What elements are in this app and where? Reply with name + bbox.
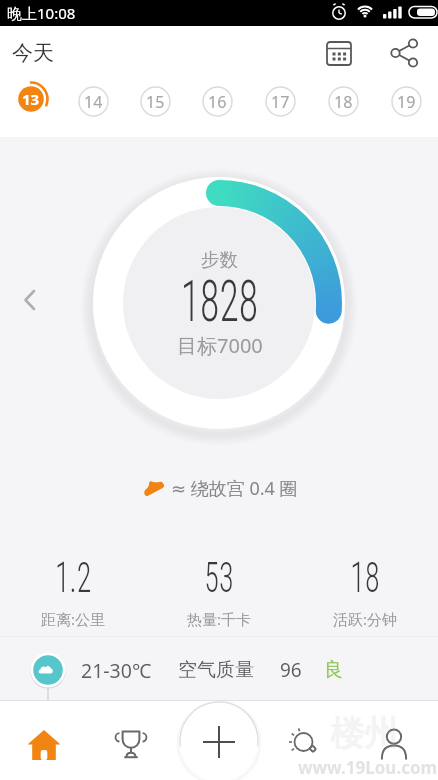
staticText: 空气质量 (178, 658, 254, 682)
button[interactable]: 21-30℃ (30, 651, 438, 689)
staticText: 1828 (181, 268, 258, 335)
staticText: 目标7000 (177, 332, 263, 359)
button[interactable] (87, 700, 174, 780)
button[interactable]: 15 (124, 79, 186, 123)
staticText: 楼州 (330, 712, 398, 755)
staticText: 15 (146, 91, 165, 113)
button[interactable] (389, 38, 419, 68)
button[interactable] (20, 289, 42, 311)
staticText: 18 (334, 91, 353, 113)
button[interactable]: 13 (0, 79, 62, 123)
staticText: 13 (22, 89, 40, 109)
button[interactable] (350, 700, 438, 780)
button[interactable] (0, 700, 87, 780)
staticText: 19 (397, 91, 416, 113)
staticText: 17 (271, 91, 290, 113)
staticText: 14 (84, 91, 103, 113)
button[interactable]: 16 (186, 79, 249, 123)
staticText: 步数 (201, 248, 238, 271)
button[interactable]: 19 (375, 79, 438, 123)
staticText: 16 (208, 91, 227, 113)
staticText: 21-30℃ (81, 657, 152, 684)
staticText: www.19Lou.com (298, 756, 438, 779)
button[interactable] (262, 700, 350, 780)
staticText: 活跃:分钟 (333, 609, 398, 629)
button[interactable] (324, 38, 354, 68)
button[interactable]: 18 (312, 79, 375, 123)
staticText: 晚上10:08 (7, 3, 76, 23)
staticText: ≈ 绕故宫 0.4 圈 (171, 476, 298, 498)
button[interactable] (174, 700, 262, 780)
staticText: 良 (324, 658, 343, 682)
staticText: 热量:千卡 (187, 609, 252, 629)
button[interactable]: 17 (249, 79, 312, 123)
staticText: 距离:公里 (41, 609, 106, 629)
button[interactable]: 14 (62, 79, 124, 123)
staticText: 53 (204, 552, 234, 602)
staticText: 今天 (12, 40, 54, 66)
staticText: 96 (280, 657, 302, 683)
staticText: 1.2 (55, 552, 92, 602)
staticText: 18 (350, 552, 380, 602)
